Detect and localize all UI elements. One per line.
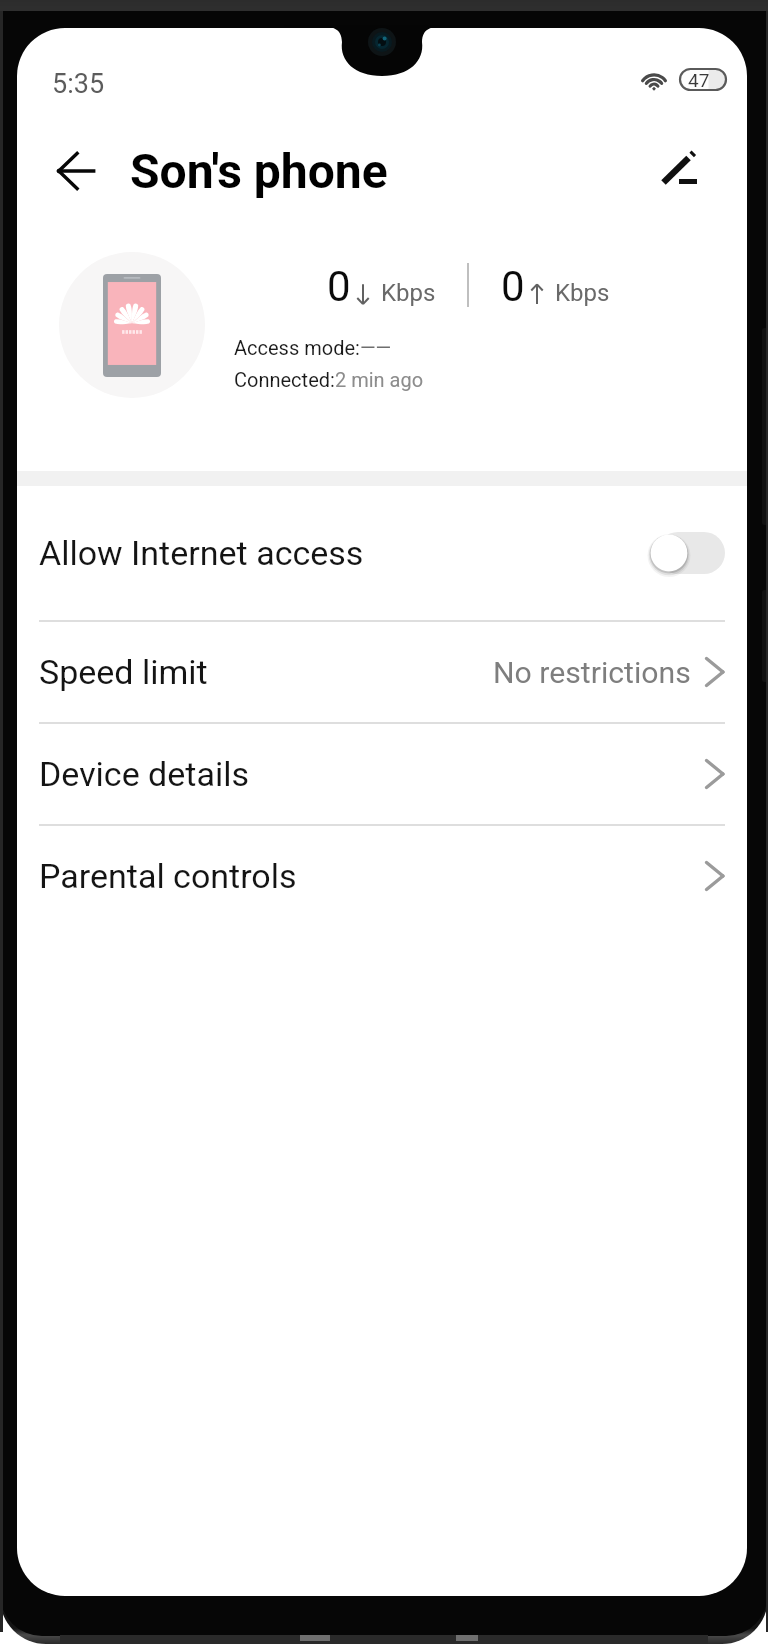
staticText: Kbps bbox=[381, 279, 436, 307]
staticText: 5:35 bbox=[52, 68, 105, 100]
button[interactable]: Speed limit bbox=[17, 622, 747, 722]
staticText: Access mode: bbox=[234, 336, 360, 359]
staticText: 2 min ago bbox=[335, 368, 424, 391]
staticText: —— bbox=[360, 336, 392, 359]
button[interactable]: Back bbox=[44, 137, 110, 203]
staticText: Connected: bbox=[234, 368, 335, 391]
button[interactable]: Allow Internet access bbox=[645, 530, 725, 576]
button[interactable]: Allow Internet access bbox=[17, 486, 747, 620]
staticText: Device details bbox=[39, 754, 250, 794]
staticText: 0 bbox=[327, 262, 351, 311]
staticText: No restrictions bbox=[493, 655, 691, 690]
staticText: 0 bbox=[501, 262, 525, 311]
button[interactable]: Rename device bbox=[647, 139, 711, 203]
staticText: Son's phone bbox=[130, 143, 388, 199]
staticText: 47 bbox=[688, 69, 710, 90]
staticText: Speed limit bbox=[39, 652, 208, 692]
button[interactable]: Device details bbox=[17, 724, 747, 824]
staticText: Parental controls bbox=[39, 856, 297, 896]
staticText: Kbps bbox=[555, 279, 610, 307]
staticText: Allow Internet access bbox=[39, 533, 364, 573]
button[interactable]: Parental controls bbox=[17, 826, 747, 926]
